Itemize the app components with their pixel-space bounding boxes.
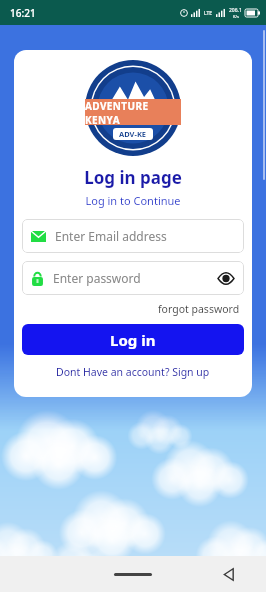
- button[interactable]: Enter Email address: [22, 219, 244, 253]
- staticText: 16:21: [10, 6, 36, 20]
- button[interactable]: Enter password: [22, 261, 244, 295]
- button[interactable]: Back: [218, 564, 238, 584]
- staticText: Log in to Continue: [85, 193, 181, 208]
- staticText: ADV-KE: [119, 129, 147, 139]
- staticText: LTE: [204, 10, 213, 17]
- button[interactable]: forgot password: [154, 300, 244, 318]
- staticText: Log in page: [84, 166, 182, 189]
- staticText: ADVENTURE KENYA: [85, 99, 181, 125]
- staticText: 206.1: [229, 7, 242, 14]
- staticText: Enter password: [53, 270, 141, 286]
- button[interactable]: Log in: [22, 324, 244, 355]
- staticText: K/s: [233, 14, 239, 19]
- staticText: Dont Have an account? Sign up: [56, 365, 210, 379]
- button[interactable]: Show password: [217, 269, 235, 287]
- staticText: Log in: [110, 330, 156, 350]
- staticText: forgot password: [158, 302, 240, 316]
- button[interactable]: Home: [114, 573, 152, 576]
- staticText: Enter Email address: [55, 228, 167, 244]
- button[interactable]: Dont Have an account? Sign up: [52, 363, 214, 381]
